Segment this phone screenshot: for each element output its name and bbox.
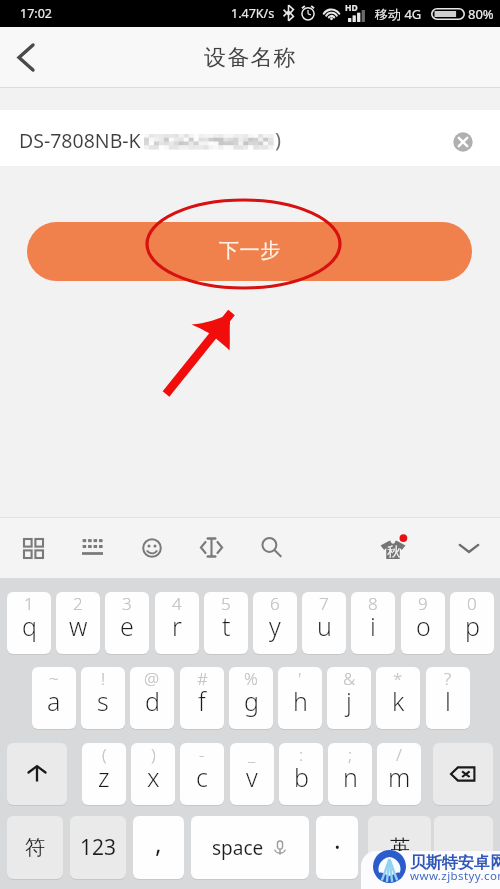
staticText: 设备名称 <box>204 44 297 72</box>
button[interactable]: 5 <box>204 592 248 654</box>
staticText: space <box>212 835 264 861</box>
staticText: DS-7808NB-K <box>19 127 141 154</box>
staticText: / <box>396 743 402 766</box>
button[interactable]: 下一步 <box>27 222 472 281</box>
staticText: % <box>244 667 258 690</box>
button[interactable]: ! <box>81 667 125 729</box>
staticText: 17:02 <box>20 5 52 22</box>
button[interactable]: Grid <box>11 525 53 570</box>
staticText: 9 <box>418 592 428 615</box>
staticText: n <box>343 760 358 794</box>
button[interactable]: Hide keyboard <box>448 525 490 570</box>
staticText: m <box>388 760 411 794</box>
staticText: @ <box>144 667 160 690</box>
staticText: q <box>22 609 37 643</box>
staticText: - <box>199 743 205 766</box>
staticText: 移动 4G <box>375 5 422 23</box>
button[interactable]: ' <box>278 667 322 729</box>
button[interactable]: _ <box>230 743 274 805</box>
button[interactable]: Back <box>2 27 50 88</box>
button[interactable]: , <box>133 816 184 879</box>
button[interactable]: 2 <box>56 592 100 654</box>
staticText: j <box>346 684 352 718</box>
button[interactable]: 英 <box>368 816 431 879</box>
button[interactable]: ( <box>82 743 126 805</box>
staticText: o <box>416 609 431 643</box>
button[interactable]: - <box>180 743 224 805</box>
staticText: z <box>98 760 110 794</box>
staticText: ) <box>151 743 156 766</box>
button[interactable]: 0 <box>450 592 494 654</box>
button[interactable]: 1 <box>7 592 51 654</box>
button[interactable]: 4 <box>155 592 199 654</box>
button[interactable]: space <box>191 816 309 879</box>
staticText: ; <box>348 743 353 766</box>
button[interactable]: & <box>327 667 371 729</box>
button[interactable]: Backspace <box>433 743 493 805</box>
staticText: 8 <box>368 592 378 615</box>
staticText: 秋 <box>387 543 400 559</box>
staticText: g <box>244 684 259 718</box>
staticText: s <box>97 684 109 718</box>
staticText: c <box>196 760 208 794</box>
staticText: 3 <box>122 592 132 615</box>
button[interactable]: · <box>316 816 358 879</box>
button[interactable]: : <box>279 743 323 805</box>
button[interactable]: Themes <box>372 525 414 570</box>
staticText: p <box>465 609 480 643</box>
staticText: f <box>198 684 206 718</box>
staticText: 6 <box>270 592 280 615</box>
button[interactable]: @ <box>130 667 174 729</box>
staticText: · <box>334 829 341 863</box>
staticText: ' <box>298 667 302 690</box>
button[interactable]: Shift <box>7 743 67 805</box>
staticText: y <box>269 609 281 643</box>
staticText: 1 <box>24 592 34 615</box>
staticText: : <box>299 743 304 766</box>
staticText: r <box>172 609 182 643</box>
button[interactable]: Emoji <box>131 525 173 570</box>
staticText: 80% <box>468 5 494 23</box>
staticText: ! <box>101 667 106 690</box>
staticText: ) <box>275 126 281 153</box>
button[interactable]: Enter <box>434 816 493 879</box>
button[interactable]: Search <box>250 525 292 570</box>
staticText: 贝斯特安卓网 <box>410 853 500 873</box>
staticText: a <box>47 684 61 718</box>
button[interactable]: 123 <box>70 816 126 879</box>
button[interactable]: Text tools <box>190 525 232 570</box>
staticText: 5 <box>221 592 231 615</box>
staticText: h <box>293 684 308 718</box>
staticText: e <box>120 609 134 643</box>
button[interactable]: 8 <box>351 592 395 654</box>
staticText: 下一步 <box>219 238 281 263</box>
button[interactable]: % <box>229 667 273 729</box>
staticText: 0 <box>467 592 477 615</box>
button[interactable]: Clear <box>445 124 481 160</box>
staticText: _ <box>248 743 256 766</box>
button[interactable]: 3 <box>105 592 149 654</box>
staticText: HD <box>345 2 358 14</box>
staticText: d <box>145 684 160 718</box>
staticText: www.zjbstyy.com <box>410 868 500 884</box>
staticText: ( <box>102 743 107 766</box>
button[interactable]: ; <box>328 743 372 805</box>
button[interactable]: 符 <box>7 816 63 879</box>
staticText: t <box>222 609 231 643</box>
button[interactable]: # <box>180 667 224 729</box>
staticText: x <box>147 760 160 794</box>
button[interactable]: ) <box>131 743 175 805</box>
button[interactable]: 7 <box>302 592 346 654</box>
staticText: k <box>392 684 405 718</box>
staticText: 1.47K/s <box>231 5 275 22</box>
button[interactable]: 6 <box>253 592 297 654</box>
button[interactable]: / <box>377 743 421 805</box>
button[interactable]: 9 <box>401 592 445 654</box>
button[interactable]: ~ <box>32 667 76 729</box>
button[interactable]: * <box>376 667 420 729</box>
button[interactable]: Keyboard <box>71 525 113 570</box>
staticText: 7 <box>319 592 329 615</box>
button[interactable]: ? <box>426 667 470 729</box>
staticText: # <box>197 667 208 690</box>
staticText: w <box>69 609 88 643</box>
